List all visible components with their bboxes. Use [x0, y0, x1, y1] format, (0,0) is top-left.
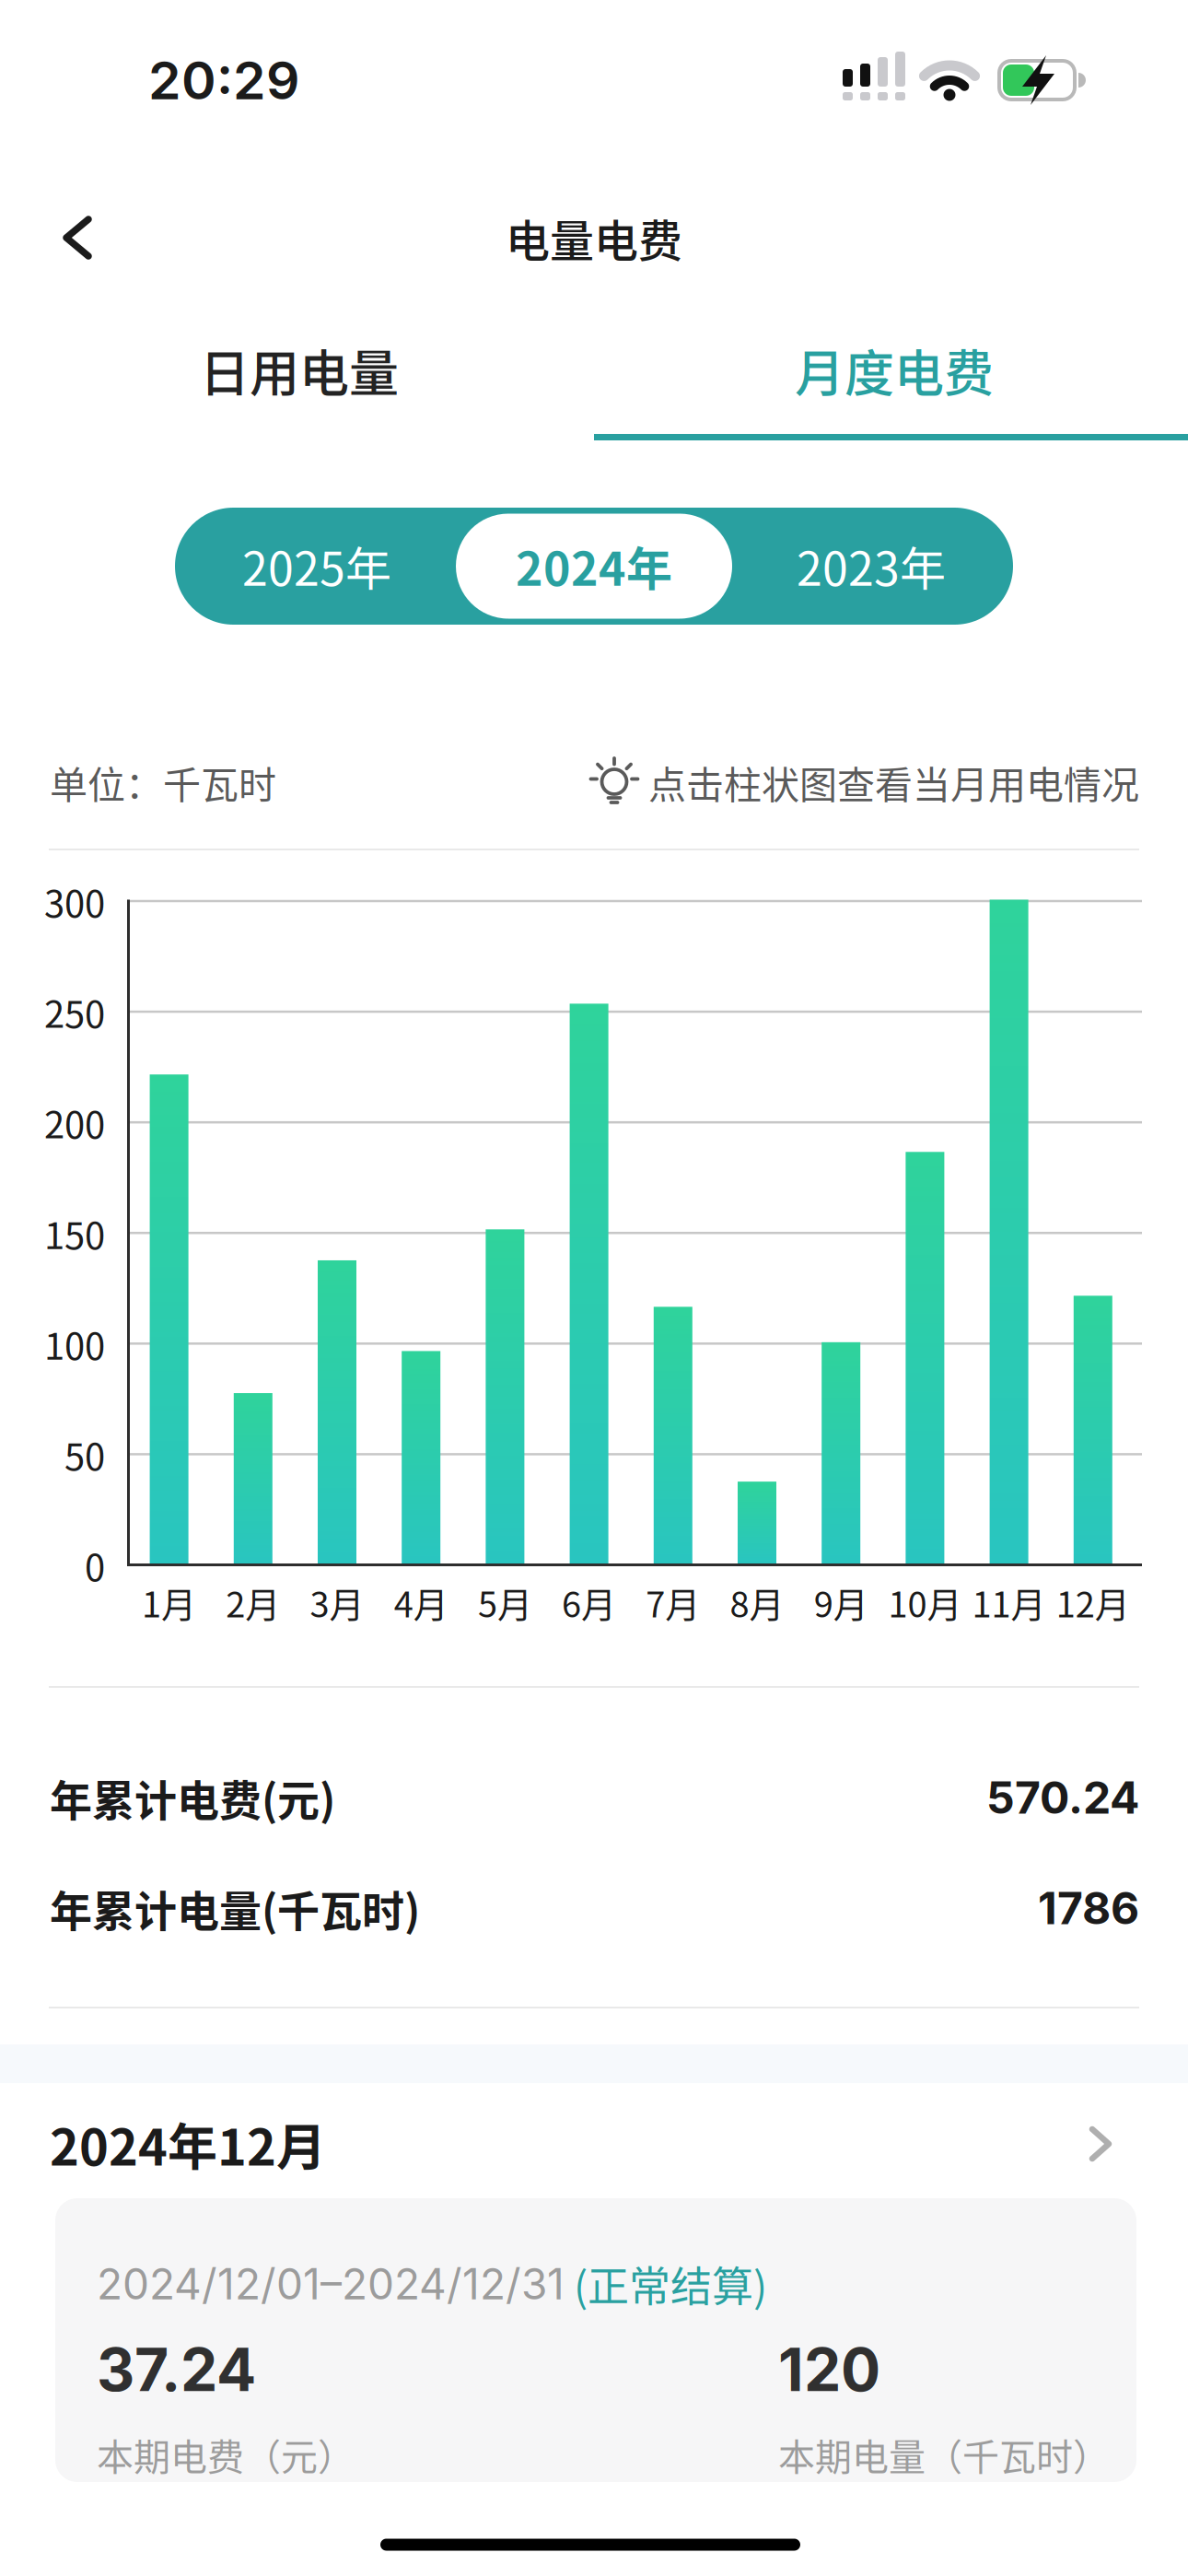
staticText: 2024/12/01–2024/12/31	[97, 2258, 565, 2310]
staticText: 本期电量（千瓦时）	[778, 2428, 1110, 2481]
staticText: 日用电量	[200, 334, 399, 406]
staticText: 100	[44, 1317, 105, 1370]
staticText: 120	[778, 2334, 880, 2405]
staticText: 2023年	[797, 532, 946, 599]
staticText: 5月	[478, 1577, 532, 1628]
staticText: 300	[44, 874, 105, 928]
staticText: 1月	[142, 1577, 196, 1628]
staticText: 10月	[888, 1577, 962, 1628]
staticText: 本期电费（元）	[97, 2428, 355, 2481]
staticText: 2024年	[516, 532, 672, 599]
staticText: 电量电费	[506, 206, 682, 270]
staticText: 2025年	[242, 532, 391, 599]
staticText: 250	[44, 985, 105, 1038]
staticText: 200	[44, 1096, 105, 1149]
staticText: 11月	[972, 1577, 1046, 1628]
staticText: 150	[44, 1206, 105, 1260]
staticText: 单位：千瓦时	[50, 755, 276, 810]
staticText: 3月	[310, 1577, 364, 1628]
staticText: 年累计电量(千瓦时)	[50, 1877, 420, 1939]
staticText: 6月	[562, 1577, 616, 1628]
staticText: 7月	[646, 1577, 700, 1628]
staticText: 50	[64, 1428, 105, 1481]
staticText: 8月	[730, 1577, 784, 1628]
staticText: 12月	[1056, 1577, 1130, 1628]
staticText: 月度电费	[795, 334, 994, 406]
staticText: 20:29	[148, 48, 299, 112]
staticText: 9月	[814, 1577, 868, 1628]
staticText: 点击柱状图查看当月用电情况	[648, 755, 1139, 810]
staticText: 570.24	[986, 1771, 1139, 1824]
staticText: 1786	[1038, 1881, 1139, 1935]
staticText: 年累计电费(元)	[50, 1767, 335, 1828]
staticText: 2024年12月	[50, 2108, 326, 2180]
staticText: (正常结算)	[574, 2254, 767, 2314]
staticText: 37.24	[97, 2334, 256, 2405]
staticText: 4月	[394, 1577, 448, 1628]
staticText: 2月	[226, 1577, 280, 1628]
staticText: 0	[85, 1538, 105, 1591]
